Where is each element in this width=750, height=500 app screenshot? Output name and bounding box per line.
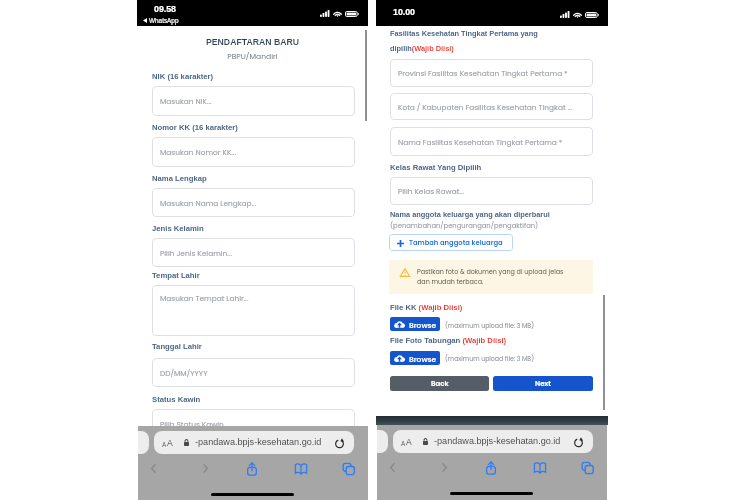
- button[interactable]: Forward: [199, 462, 212, 475]
- staticText: File KK (Wajib Diisi): [390, 303, 463, 312]
- staticText: Pilih Status Kawin...: [160, 419, 229, 429]
- button[interactable]: Browse: [390, 351, 440, 365]
- button[interactable]: Next: [493, 376, 593, 391]
- staticText: Pilih Kelas Rawat...: [398, 186, 464, 196]
- staticText: Pastikan foto & dokumen yang di upload j…: [417, 267, 564, 276]
- button[interactable]: Pilih Kelas Rawat...: [390, 177, 593, 205]
- button[interactable]: Masukan Nama Lengkap...: [152, 188, 355, 217]
- staticText: Provinsi Fasilitas Kesehatan Tingkat Per…: [398, 68, 568, 78]
- button[interactable]: Nama Fasilitas Kesehatan Tingkat Pertama…: [390, 127, 593, 156]
- button[interactable]: Share: [245, 462, 259, 476]
- staticText: Masukan Tempat Lahir...: [160, 293, 249, 303]
- button[interactable]: Back: [386, 461, 399, 474]
- staticText: Browse: [409, 354, 437, 364]
- staticText: Nama anggota keluarga yang akan diperbar…: [390, 210, 550, 218]
- staticText: 10.00: [393, 7, 416, 17]
- button[interactable]: A: [393, 430, 593, 453]
- staticText: Kelas Rawat Yang Dipilih: [390, 163, 482, 172]
- staticText: Tanggal Lahir: [152, 342, 202, 351]
- button[interactable]: Kota / Kabupaten Fasilitas Kesehatan Tin…: [390, 93, 593, 120]
- staticText: (maximum upload file: 3 MB): [445, 321, 534, 330]
- staticText: Masukan Nama Lengkap...: [160, 198, 257, 208]
- button[interactable]: Masukan Nomor KK...: [152, 137, 355, 167]
- button[interactable]: Provinsi Fasilitas Kesehatan Tingkat Per…: [390, 59, 593, 87]
- staticText: Browse: [409, 320, 437, 330]
- button[interactable]: Reload: [334, 438, 345, 449]
- staticText: Status Kawin: [152, 395, 201, 404]
- staticText: NIK (16 karakter): [152, 72, 214, 81]
- staticText: (maximum upload file: 3 MB): [445, 354, 534, 363]
- staticText: PBPU/Mandiri: [137, 51, 368, 62]
- button[interactable]: Browse: [390, 317, 440, 331]
- staticText: Next: [535, 379, 551, 389]
- staticText: A: [167, 438, 173, 448]
- staticText: dipilih(Wajib Diisi): [390, 44, 454, 52]
- staticText: Jenis Kelamin: [152, 224, 204, 233]
- staticText: A: [406, 437, 412, 447]
- staticText: Kota / Kabupaten Fasilitas Kesehatan Tin…: [398, 102, 573, 112]
- staticText: Masukan NIK...: [160, 96, 212, 106]
- button[interactable]: Tabs: [581, 461, 595, 475]
- button[interactable]: Masukan NIK...: [152, 86, 355, 116]
- staticText: Back: [431, 379, 449, 389]
- staticText: dan mudah terbaca.: [417, 277, 484, 286]
- button[interactable]: Back: [147, 462, 160, 475]
- button[interactable]: Tambah anggota keluarga: [389, 234, 513, 251]
- staticText: Nama Lengkap: [152, 174, 207, 183]
- staticText: File Foto Tabungan (Wajib Diisi): [390, 336, 507, 345]
- button[interactable]: Reload: [573, 437, 584, 448]
- staticText: (penambahan/pengurangan/pengaktifan): [390, 221, 539, 231]
- button[interactable]: Pilih Jenis Kelamin...: [152, 238, 355, 267]
- staticText: -pandawa.bpjs-kesehatan.go.id: [434, 436, 561, 446]
- button[interactable]: Masukan Tempat Lahir...: [152, 285, 355, 336]
- button[interactable]: Back: [390, 376, 489, 391]
- staticText: -pandawa.bpjs-kesehatan.go.id: [195, 437, 322, 447]
- button[interactable]: DD/MM/YYYY: [152, 358, 355, 387]
- staticText: Tempat Lahir: [152, 271, 200, 280]
- button[interactable]: Tabs: [342, 462, 356, 476]
- staticText: 09.58: [154, 4, 177, 14]
- staticText: Tambah anggota keluarga: [409, 238, 503, 248]
- staticText: Masukan Nomor KK...: [160, 147, 236, 157]
- button[interactable]: A: [154, 431, 354, 454]
- button[interactable]: Share: [484, 461, 498, 475]
- staticText: DD/MM/YYYY: [160, 368, 208, 378]
- staticText: Pilih Jenis Kelamin...: [160, 248, 232, 258]
- button[interactable]: Bookmarks: [533, 461, 547, 475]
- button[interactable]: Forward: [438, 461, 451, 474]
- staticText: A: [401, 440, 406, 447]
- staticText: WhatsApp: [149, 17, 179, 24]
- staticText: Nomor KK (16 karakter): [152, 123, 238, 132]
- button[interactable]: Bookmarks: [294, 462, 308, 476]
- staticText: Nama Fasilitas Kesehatan Tingkat Pertama…: [398, 137, 563, 147]
- staticText: A: [162, 441, 167, 448]
- staticText: PENDAFTARAN BARU: [137, 37, 368, 47]
- staticText: Fasilitas Kesehatan Tingkat Pertama yang: [390, 29, 538, 37]
- button[interactable]: Pilih Status Kawin...: [152, 409, 355, 438]
